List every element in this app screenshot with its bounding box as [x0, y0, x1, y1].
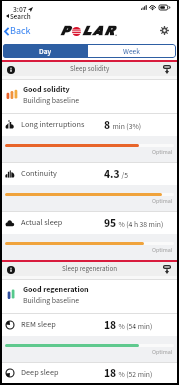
button[interactable]: Good solidity [6, 80, 177, 113]
staticText: LAR [82, 24, 116, 38]
staticText: % (52 min) [117, 369, 153, 380]
staticText: Long interruptions [21, 119, 85, 131]
button[interactable]: Filter [161, 263, 173, 275]
staticText: Optimal [152, 148, 173, 157]
staticText: REM sleep [21, 319, 56, 331]
button[interactable]: Info [5, 64, 16, 75]
staticText: 8 [104, 117, 111, 133]
staticText: Sleep solidity [70, 64, 110, 74]
button[interactable]: Week [88, 44, 176, 58]
staticText: 95 [104, 215, 117, 231]
staticText: . [115, 29, 118, 39]
staticText: Sleep regeneration [62, 264, 118, 274]
staticText: Building baseline [23, 95, 80, 106]
button[interactable]: REM sleep [2, 314, 177, 362]
staticText: Good solidity [23, 84, 70, 95]
button[interactable]: Filter [161, 63, 173, 75]
staticText: Search [10, 12, 31, 20]
button[interactable]: Day [3, 44, 88, 58]
staticText: Week [123, 46, 141, 57]
button[interactable]: Settings [158, 24, 171, 37]
staticText: Deep sleep [21, 367, 59, 379]
staticText: Continuity [21, 168, 57, 180]
button[interactable]: Info [5, 264, 16, 275]
staticText: Back [10, 24, 31, 38]
staticText: 3:07 [13, 4, 27, 15]
staticText: Actual sleep [21, 217, 63, 229]
staticText: % (54 min) [117, 321, 153, 332]
staticText: Optimal [152, 246, 173, 255]
staticText: P [60, 24, 72, 38]
staticText: Optimal [152, 348, 173, 357]
staticText: Building baseline [23, 295, 80, 306]
staticText: Day [39, 46, 52, 57]
staticText: % (4 h 38 min) [117, 219, 164, 230]
staticText: 18 [104, 317, 117, 333]
staticText: Good regeneration [23, 284, 89, 295]
button[interactable]: Back [4, 24, 31, 38]
staticText: 4.3 [104, 166, 120, 182]
button[interactable]: Deep sleep [2, 363, 177, 383]
button[interactable]: Search [6, 12, 31, 20]
staticText: 18 [104, 365, 117, 381]
button[interactable]: Good regeneration [6, 280, 177, 313]
staticText: /5 [120, 170, 128, 181]
button[interactable]: Continuity [2, 163, 177, 211]
staticText: Optimal [152, 197, 173, 206]
button[interactable]: Actual sleep [2, 212, 177, 260]
staticText: min (3%) [111, 121, 141, 132]
button[interactable]: Long interruptions [2, 114, 177, 162]
